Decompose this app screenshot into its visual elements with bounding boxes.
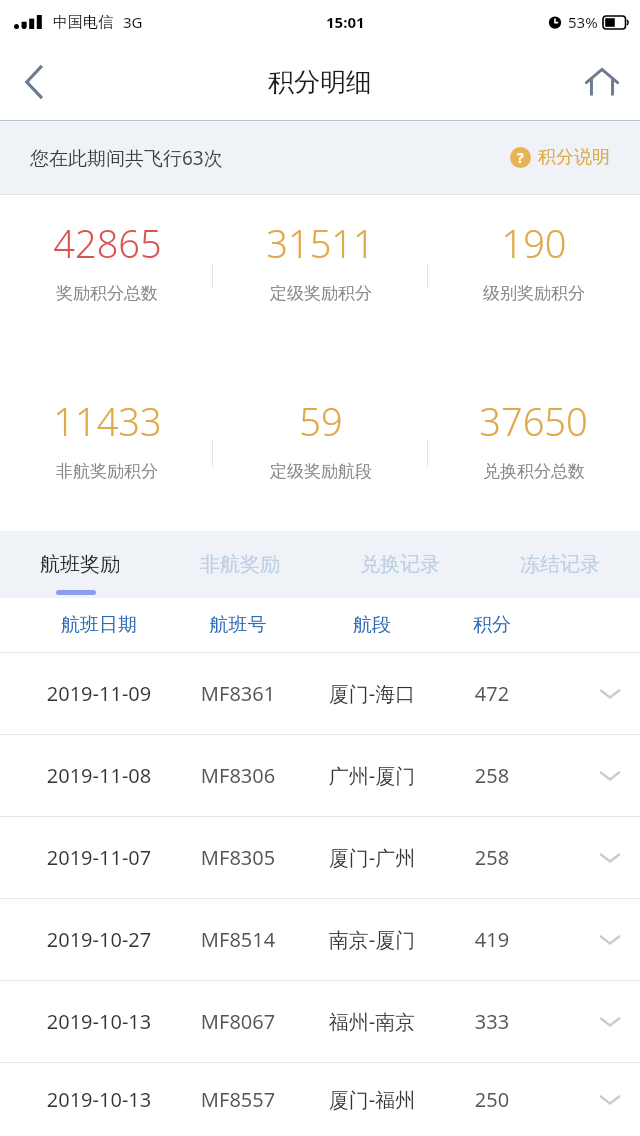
staticText: 航段	[302, 613, 442, 637]
staticText: 定级奖励航段	[270, 461, 372, 482]
staticText: MF8557	[174, 1086, 302, 1113]
staticText: 3G	[123, 12, 143, 32]
button[interactable]: 2019-10-13	[0, 981, 640, 1062]
staticText: 258	[442, 844, 542, 871]
staticText: 厦门-海口	[302, 680, 442, 707]
button[interactable]: Home	[574, 54, 630, 110]
staticText: 11433	[53, 395, 162, 447]
button[interactable]: 兑换记录	[320, 531, 480, 598]
staticText: 2019-10-27	[24, 926, 174, 953]
button[interactable]: 2019-11-09	[0, 653, 640, 734]
staticText: 兑换积分总数	[483, 461, 585, 482]
staticText: 定级奖励积分	[270, 283, 372, 304]
staticText: 2019-10-13	[24, 1008, 174, 1035]
staticText: 奖励积分总数	[56, 283, 158, 304]
staticText: 258	[442, 762, 542, 789]
staticText: 419	[442, 926, 542, 953]
staticText: 级别奖励积分	[483, 283, 585, 304]
button[interactable]: Back	[6, 54, 62, 110]
staticText: 冻结记录	[520, 552, 600, 577]
staticText: MF8306	[174, 762, 302, 789]
staticText: 2019-11-07	[24, 844, 174, 871]
staticText: 15:01	[326, 12, 365, 32]
staticText: 厦门-广州	[302, 844, 442, 871]
button[interactable]: 2019-10-27	[0, 899, 640, 980]
staticText: 您在此期间共飞行63次	[30, 145, 223, 171]
staticText: 积分说明	[538, 146, 610, 169]
staticText: 31511	[266, 217, 375, 269]
staticText: 190	[501, 217, 567, 269]
button[interactable]: 非航奖励	[160, 531, 320, 598]
staticText: 59	[299, 395, 343, 447]
button[interactable]: 2019-10-13	[0, 1063, 640, 1136]
staticText: 2019-10-13	[24, 1086, 174, 1113]
button[interactable]: 2019-11-08	[0, 735, 640, 816]
button[interactable]: 2019-11-07	[0, 817, 640, 898]
staticText: 250	[442, 1086, 542, 1113]
button[interactable]: 冻结记录	[480, 531, 640, 598]
staticText: 航班日期	[24, 613, 174, 637]
staticText: 积分	[442, 613, 542, 637]
staticText: 472	[442, 680, 542, 707]
staticText: 航班号	[174, 613, 302, 637]
staticText: 2019-11-08	[24, 762, 174, 789]
staticText: MF8514	[174, 926, 302, 953]
staticText: 42865	[53, 217, 162, 269]
staticText: 2019-11-09	[24, 680, 174, 707]
staticText: 积分明细	[268, 66, 372, 99]
staticText: 航班奖励	[40, 552, 120, 577]
staticText: MF8361	[174, 680, 302, 707]
staticText: 中国电信	[53, 13, 113, 32]
staticText: 兑换记录	[360, 552, 440, 577]
staticText: MF8305	[174, 844, 302, 871]
staticText: MF8067	[174, 1008, 302, 1035]
staticText: 37650	[479, 395, 588, 447]
staticText: 53%	[568, 12, 598, 32]
staticText: 南京-厦门	[302, 926, 442, 953]
staticText: 333	[442, 1008, 542, 1035]
staticText: 非航奖励	[200, 552, 280, 577]
staticText: 广州-厦门	[302, 762, 442, 789]
staticText: 厦门-福州	[302, 1086, 442, 1113]
staticText: ?	[517, 148, 524, 167]
button[interactable]: ?	[506, 142, 614, 173]
button[interactable]: 航班奖励	[0, 531, 160, 598]
staticText: 非航奖励积分	[56, 461, 158, 482]
staticText: 福州-南京	[302, 1008, 442, 1035]
